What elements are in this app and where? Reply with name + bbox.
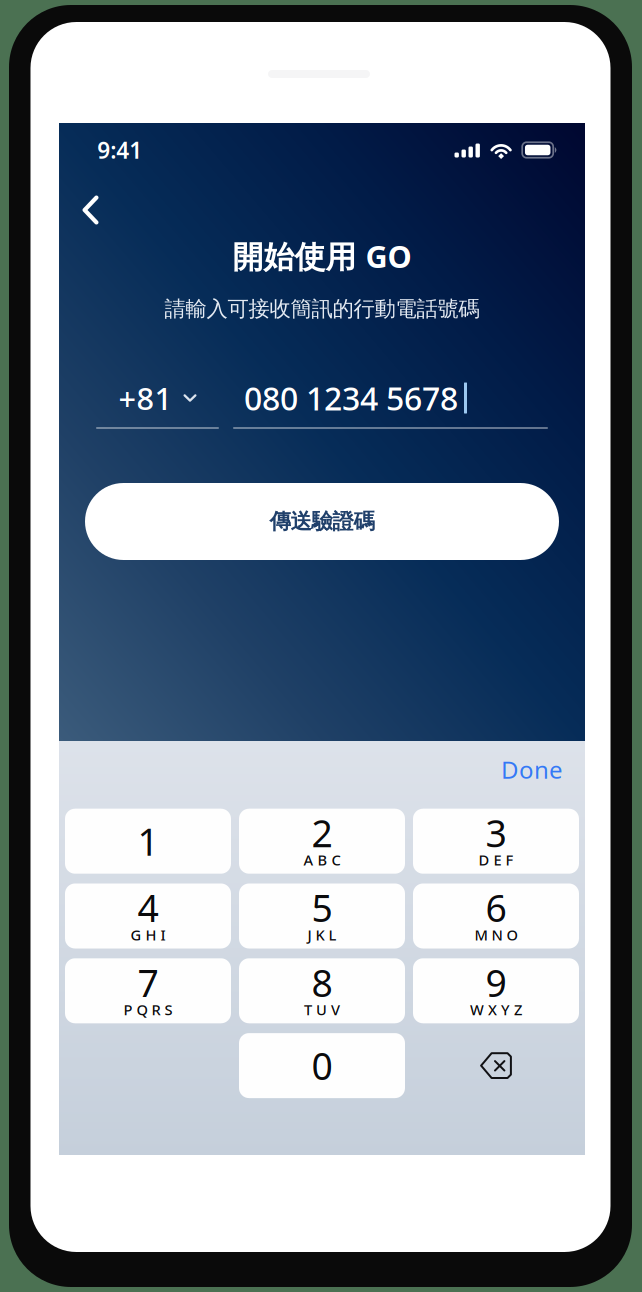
staticText: M N O (474, 925, 517, 944)
button[interactable]: 9 (413, 958, 579, 1023)
button[interactable]: Back (62, 182, 118, 238)
staticText: 8 (311, 958, 332, 1007)
button[interactable]: 3 (413, 809, 579, 874)
staticText: 6 (485, 883, 506, 932)
staticText: P Q R S (123, 1000, 172, 1019)
staticText: W X Y Z (470, 1000, 522, 1019)
staticText: T U V (304, 1000, 340, 1019)
staticText: D E F (478, 850, 513, 870)
staticText: 1 (137, 816, 158, 866)
staticText: 傳送驗證碼 (269, 508, 374, 535)
staticText: 4 (137, 883, 158, 932)
staticText: Done (501, 754, 563, 785)
staticText: 3 (485, 808, 506, 858)
button[interactable]: 6 (413, 883, 579, 948)
button[interactable]: 1 (65, 809, 231, 874)
staticText: 9:41 (97, 135, 142, 165)
staticText: 請輸入可接收簡訊的行動電話號碼 (164, 296, 479, 322)
staticText: A B C (303, 850, 340, 870)
button[interactable]: 5 (239, 883, 405, 948)
staticText: 2 (311, 808, 332, 858)
staticText: G H I (130, 925, 165, 944)
button[interactable]: 傳送驗證碼 (85, 483, 559, 560)
button[interactable]: 0 (239, 1033, 405, 1098)
staticText: 080 1234 5678 (244, 377, 458, 419)
button[interactable]: 2 (239, 809, 405, 874)
button[interactable]: Done (443, 743, 563, 795)
button[interactable]: 4 (65, 883, 231, 948)
button[interactable]: 8 (239, 958, 405, 1023)
staticText: J K L (307, 925, 336, 944)
staticText: 7 (137, 958, 158, 1007)
staticText: 開始使用 GO (232, 236, 411, 276)
button[interactable]: +81 (96, 370, 219, 426)
staticText: 5 (311, 883, 332, 932)
staticText: 0 (311, 1041, 332, 1090)
staticText: +81 (118, 378, 172, 418)
button[interactable]: 7 (65, 958, 231, 1023)
button[interactable]: Delete (413, 1033, 579, 1098)
staticText: 9 (485, 958, 506, 1007)
